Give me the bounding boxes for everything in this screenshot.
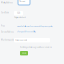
staticText: By clicking submit you agree to the serv… xyxy=(20,46,52,48)
staticText: change address · use billing xyxy=(17,31,36,33)
button[interactable]: 123 xyxy=(14,11,23,15)
staticText: Mailing Address xyxy=(1,2,13,4)
staticText: Marketing code xyxy=(1,39,14,41)
staticText: 123 xyxy=(17,12,20,14)
staticText: Submit xyxy=(21,52,26,54)
button[interactable]: Submit xyxy=(20,51,28,55)
staticText: Price xyxy=(1,25,5,27)
staticText: Service Address xyxy=(1,31,14,33)
staticText: Enter your code xyxy=(15,39,27,41)
staticText: Street xyxy=(19,0,25,2)
button[interactable]: Street xyxy=(18,0,30,5)
staticText: view the full terms of service and the p… xyxy=(17,26,53,27)
staticText: Card Code xyxy=(1,12,9,14)
staticText: 3 digits on the back xyxy=(14,17,26,18)
button[interactable]: Enter your code xyxy=(14,38,50,42)
